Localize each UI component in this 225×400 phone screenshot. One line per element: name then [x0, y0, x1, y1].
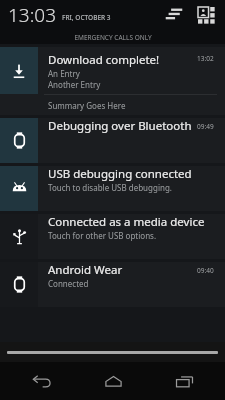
staticText: Touch for other USB options. [48, 230, 157, 241]
staticText: Download complete! [48, 52, 197, 68]
staticText: Summary Goes Here [48, 100, 126, 111]
button[interactable]: Debugging over Bluetooth [0, 118, 225, 163]
staticText: Touch to disable USB debugging. [48, 182, 172, 193]
staticText: 09:49 [197, 122, 214, 131]
staticText: 09:40 [197, 266, 214, 275]
staticText: Connected [48, 278, 89, 289]
staticText: USB debugging connected [48, 166, 219, 182]
staticText: Debugging over Bluetooth [48, 118, 197, 134]
button[interactable]: Download complete! [0, 47, 225, 115]
button[interactable]: Recent apps [154, 362, 214, 400]
button[interactable]: Quick settings [193, 2, 219, 28]
button[interactable]: Signal strength [161, 2, 187, 28]
staticText: 13:02 [197, 54, 214, 63]
staticText: 13:03 [8, 2, 57, 28]
staticText: EMERGENCY CALLS ONLY [74, 33, 152, 42]
staticText: Another Entry [48, 79, 101, 90]
button[interactable]: Connected as a media device [0, 214, 225, 259]
staticText: FRI, OCTOBER 3 [62, 13, 111, 22]
button[interactable]: Collapse notification shade [0, 342, 225, 362]
staticText: Android Wear [48, 262, 197, 278]
staticText: An Entry [48, 68, 80, 79]
button[interactable]: USB debugging connected [0, 166, 225, 211]
button[interactable]: Back [11, 362, 71, 400]
button[interactable]: Android Wear [0, 262, 225, 307]
button[interactable]: Home [83, 362, 143, 400]
staticText: Connected as a media device [48, 214, 219, 230]
